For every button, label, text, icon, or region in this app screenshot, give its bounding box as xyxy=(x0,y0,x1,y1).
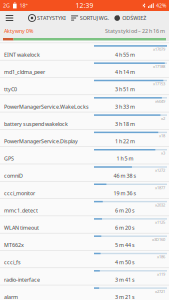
button[interactable]: x2721 xyxy=(0,285,169,300)
staticText: WLAN timeout xyxy=(4,224,39,231)
staticText: x3 xyxy=(161,150,165,156)
staticText: x18 xyxy=(159,133,165,138)
staticText: x17188 xyxy=(153,64,165,69)
staticText: x1877 xyxy=(155,185,165,190)
button[interactable]: Menu xyxy=(0,11,19,25)
staticText: 12:39 xyxy=(75,1,93,10)
staticText: mmc1_detect xyxy=(4,207,38,214)
staticText: ttyC0 xyxy=(4,86,17,93)
button[interactable]: x3 xyxy=(0,146,169,164)
staticText: x2 xyxy=(161,116,165,121)
button[interactable]: x2032 xyxy=(0,198,169,216)
staticText: x3D160 xyxy=(152,237,165,242)
staticText: ccci_monitor xyxy=(4,190,35,197)
button[interactable]: x3D160 xyxy=(0,233,169,250)
staticText: x119 xyxy=(157,271,165,277)
staticText: 1 h 22 m xyxy=(115,138,135,145)
staticText: x6049 xyxy=(155,98,165,104)
staticText: 3 h 51 m xyxy=(115,86,135,93)
staticText: ODŚWIEŻ xyxy=(122,14,146,22)
staticText: 42% xyxy=(156,2,166,9)
staticText: SORTUJ WG. xyxy=(80,14,109,22)
staticText: GPS xyxy=(4,155,14,162)
staticText: 18° xyxy=(20,2,28,9)
staticText: Statystyki od – 22 h 16 m xyxy=(105,27,165,35)
staticText: x17153 xyxy=(153,81,165,86)
staticText: x186 xyxy=(157,254,165,259)
staticText: 4 h 55 m xyxy=(115,51,135,58)
staticText: 2G xyxy=(3,2,10,9)
staticText: x2032 xyxy=(155,202,165,207)
button[interactable]: x2 xyxy=(0,112,169,129)
staticText: battery suspend wakelock xyxy=(4,120,68,127)
button[interactable]: x17153 xyxy=(0,77,169,94)
staticText: 6 m 20 s xyxy=(115,224,135,231)
button[interactable]: x6049 xyxy=(0,94,169,112)
button[interactable]: x17188 xyxy=(0,60,169,77)
staticText: 4 h 14 m xyxy=(115,68,135,76)
staticText: comniD xyxy=(4,172,23,179)
button[interactable]: STATYSTYKI xyxy=(27,11,68,25)
staticText: x1125 xyxy=(155,219,165,225)
staticText: x1272 xyxy=(155,168,165,173)
staticText: 3 h 33 m xyxy=(115,103,135,110)
staticText: 3 m 21 s xyxy=(115,293,135,300)
staticText: Aktywny 0% xyxy=(4,27,33,35)
staticText: x2721 xyxy=(155,289,165,294)
button[interactable]: x18 xyxy=(0,129,169,146)
staticText: x17079 xyxy=(153,46,165,52)
staticText: radio-interface xyxy=(4,276,40,283)
staticText: 1 h 5 m xyxy=(116,155,133,162)
staticText: 3 h 18 m xyxy=(115,120,135,127)
staticText: alarm xyxy=(4,293,18,300)
staticText: STATYSTYKI xyxy=(37,14,66,22)
button[interactable]: x119 xyxy=(0,267,169,285)
button[interactable]: ODŚWIEŻ xyxy=(112,11,148,25)
button[interactable]: SORTUJ WG. xyxy=(70,11,110,25)
button[interactable]: x1272 xyxy=(0,164,169,181)
staticText: 19 m 36 s xyxy=(113,190,136,197)
staticText: EINT wakelock xyxy=(4,51,40,58)
staticText: PowerManagerService.Display xyxy=(4,138,78,145)
button[interactable]: x17079 xyxy=(0,43,169,60)
staticText: MT662x xyxy=(4,241,24,249)
button[interactable]: x1125 xyxy=(0,216,169,233)
staticText: PowerManagerService.WakeLocks xyxy=(4,103,89,110)
staticText: ccci_fs xyxy=(4,259,21,266)
staticText: 5 m 44 s xyxy=(115,241,135,249)
staticText: 3 m 41 s xyxy=(115,276,135,283)
staticText: 6 m 20 s xyxy=(115,207,135,214)
button[interactable]: x1877 xyxy=(0,181,169,198)
button[interactable]: x186 xyxy=(0,250,169,267)
staticText: 46 m 38 s xyxy=(113,172,136,179)
staticText: md1_cldma_peer xyxy=(4,68,45,76)
staticText: 4 m 50 s xyxy=(115,259,135,266)
